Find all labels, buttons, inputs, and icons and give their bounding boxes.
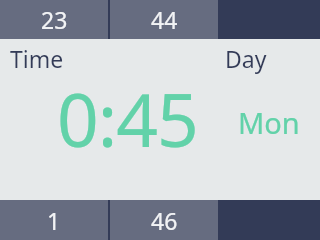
staticText: 46 (151, 205, 178, 236)
button[interactable]: 23 (0, 0, 108, 39)
button[interactable]: 1 (0, 200, 108, 240)
staticText: Day (225, 43, 267, 74)
staticText: 23 (41, 4, 68, 35)
staticText: 44 (151, 4, 178, 35)
button[interactable]: 44 (110, 0, 218, 39)
button[interactable]: 46 (110, 200, 218, 240)
button[interactable]: Mon (238, 103, 300, 142)
button[interactable]: 0:45 (57, 69, 198, 168)
staticText: Time (10, 43, 64, 74)
staticText: 1 (47, 205, 61, 236)
